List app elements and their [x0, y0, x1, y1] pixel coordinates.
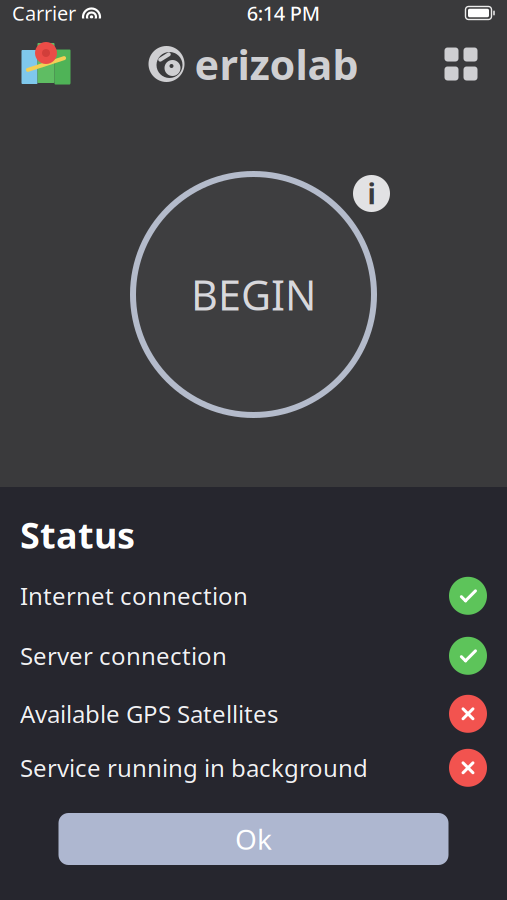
button[interactable]: Map	[14, 33, 78, 95]
button[interactable]: Information	[353, 175, 390, 212]
button[interactable]: Ok	[58, 813, 448, 865]
staticText: Carrier	[12, 0, 76, 26]
button[interactable]: Menu	[429, 33, 493, 95]
staticText: BEGIN	[191, 267, 316, 322]
button[interactable]: BEGIN	[133, 174, 374, 415]
staticText: Service running in background	[20, 752, 368, 784]
staticText: Ok	[235, 820, 272, 858]
staticText: Internet connection	[20, 580, 248, 612]
staticText: i	[367, 175, 375, 212]
staticText: erizolab	[194, 37, 358, 91]
staticText: Available GPS Satellites	[20, 698, 278, 730]
staticText: Server connection	[20, 640, 227, 672]
staticText: Status	[20, 511, 135, 559]
staticText: 6:14 PM	[247, 0, 320, 26]
